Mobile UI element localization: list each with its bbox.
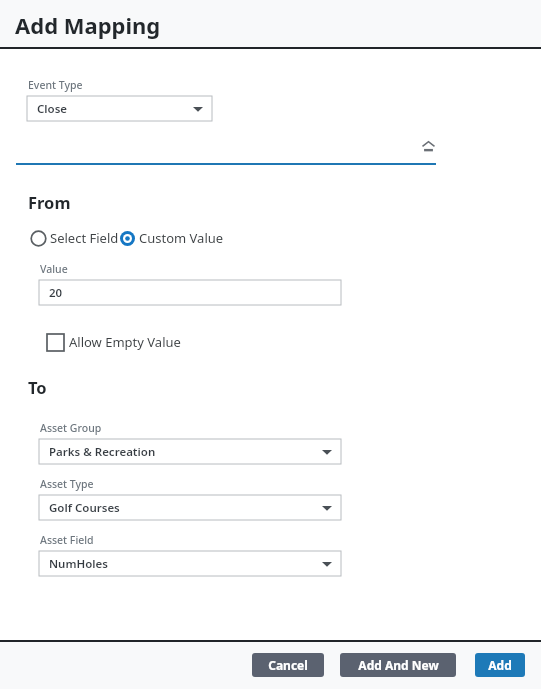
staticText: Add And New <box>358 657 439 673</box>
staticText: Allow Empty Value <box>69 333 181 351</box>
staticText: Golf Courses <box>49 500 120 516</box>
staticText: Add <box>488 657 512 673</box>
button[interactable]: Golf Courses <box>39 495 341 520</box>
button[interactable]: Cancel <box>252 653 324 677</box>
button[interactable]: 20 <box>39 280 341 305</box>
staticText: Cancel <box>268 657 308 673</box>
button[interactable]: Parks & Recreation <box>39 439 341 464</box>
staticText: Asset Type <box>40 477 94 491</box>
staticText: Select Field <box>50 229 119 247</box>
button[interactable]: Close <box>27 96 212 121</box>
staticText: Add Mapping <box>15 10 161 40</box>
staticText: Value <box>40 262 68 276</box>
button[interactable]: Select Field <box>30 229 119 247</box>
staticText: 20 <box>49 285 63 301</box>
staticText: Close <box>37 101 68 117</box>
staticText: Custom Value <box>139 229 224 247</box>
staticText: To <box>28 376 47 398</box>
staticText: From <box>28 191 71 213</box>
button[interactable]: Allow Empty Value <box>47 333 181 351</box>
button[interactable]: NumHoles <box>39 551 341 576</box>
button[interactable]: Custom Value <box>119 229 224 247</box>
staticText: Event Type <box>28 78 83 92</box>
staticText: Parks & Recreation <box>49 444 156 460</box>
staticText: Asset Group <box>40 421 102 435</box>
button[interactable]: Add And New <box>340 653 456 677</box>
button[interactable]: Add <box>475 653 525 677</box>
staticText: NumHoles <box>49 556 108 572</box>
staticText: Asset Field <box>40 533 94 547</box>
button[interactable]: Collapse section <box>418 137 438 155</box>
